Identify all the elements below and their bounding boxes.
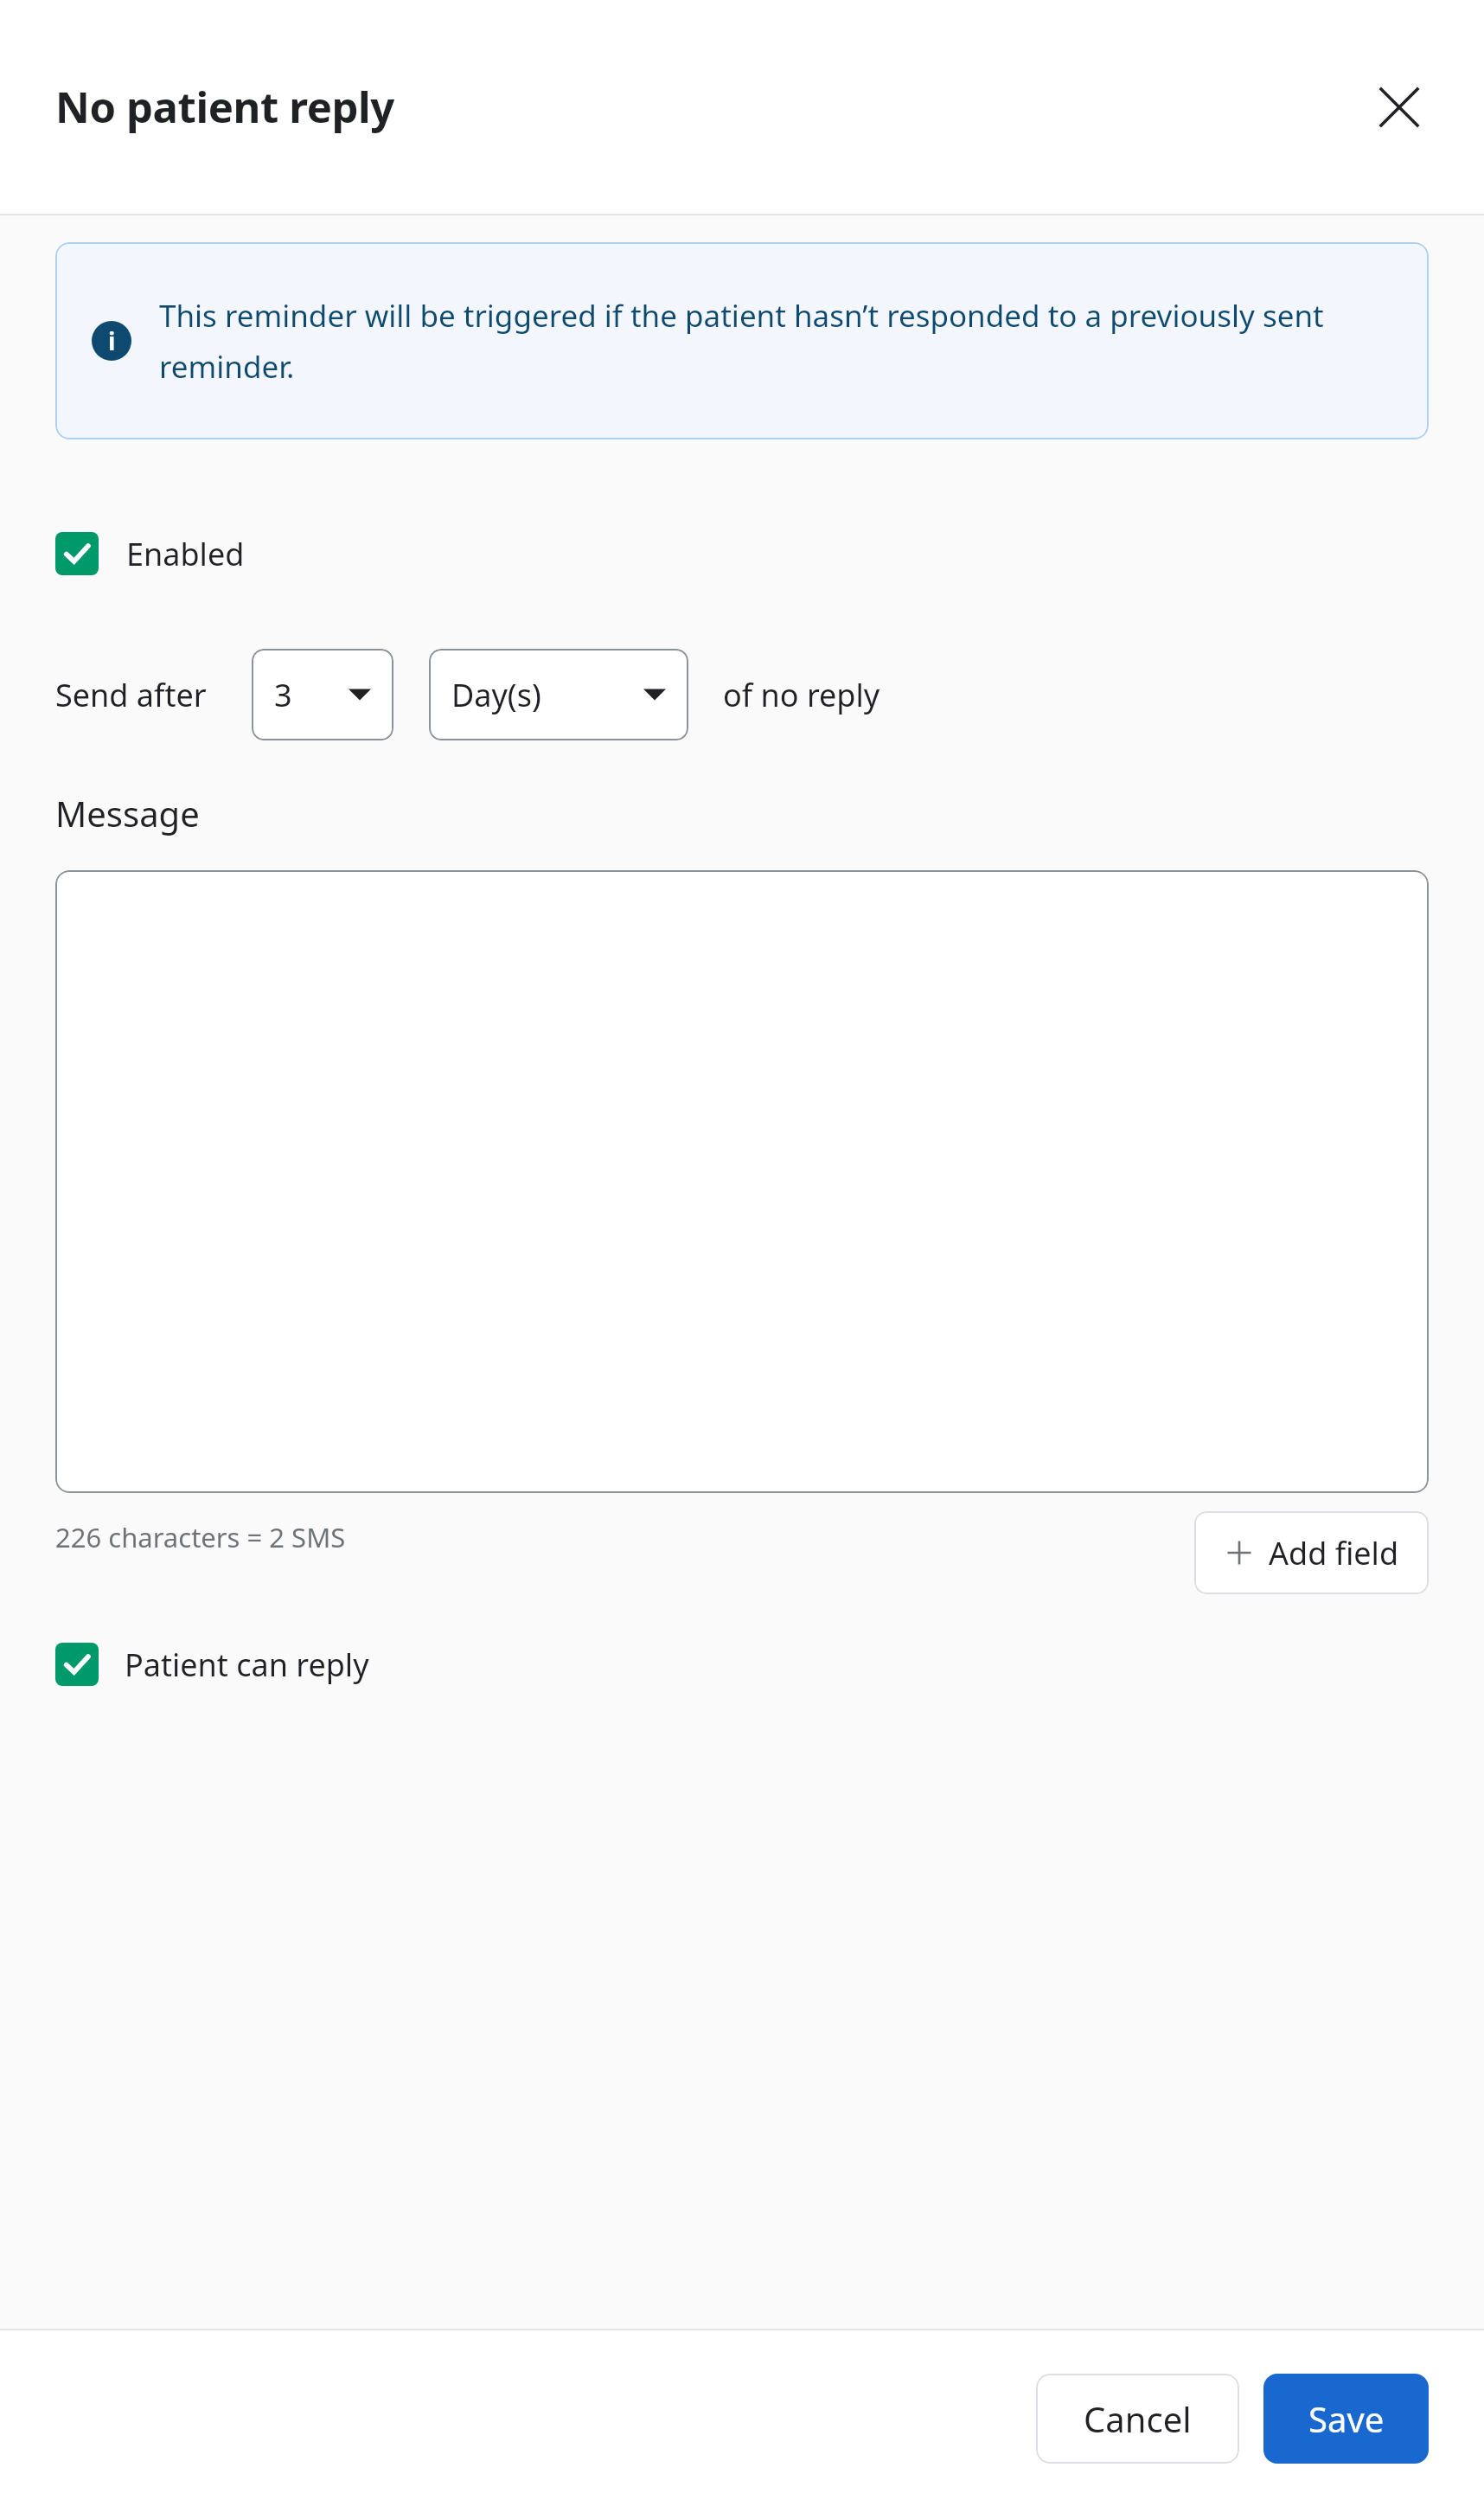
staticText: Cancel	[1084, 2395, 1192, 2442]
button[interactable]: Add field	[1194, 1511, 1429, 1594]
staticText: Patient can reply	[125, 1644, 369, 1686]
staticText: Day(s)	[451, 674, 541, 716]
staticText: Enabled	[126, 533, 245, 575]
button[interactable]: Cancel	[1036, 2374, 1239, 2464]
staticText: No patient reply	[55, 78, 394, 136]
staticText: Save	[1308, 2395, 1385, 2442]
staticText: i	[108, 324, 116, 357]
button[interactable]	[55, 870, 1429, 1493]
staticText: of no reply	[723, 674, 880, 716]
button[interactable]: 3	[252, 649, 393, 740]
button[interactable]: Patient can reply	[55, 1634, 369, 1695]
button[interactable]: Day(s)	[429, 649, 688, 740]
staticText: 3	[274, 674, 292, 716]
staticText: Add field	[1269, 1532, 1399, 1574]
staticText: Send after	[55, 674, 207, 716]
staticText: Message	[55, 790, 200, 836]
staticText: 226 characters = 2 SMS	[55, 1519, 346, 1555]
button[interactable]: Close	[1365, 73, 1434, 142]
button[interactable]: Save	[1263, 2374, 1429, 2464]
button[interactable]: Enabled	[55, 523, 245, 584]
staticText: This reminder will be triggered if the p…	[159, 295, 1403, 387]
